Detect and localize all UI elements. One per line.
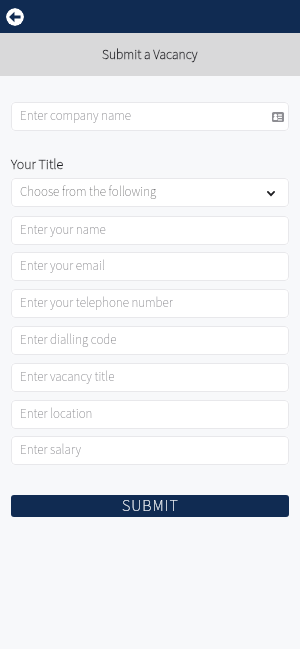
button[interactable]: Enter dialling code bbox=[11, 326, 289, 355]
button[interactable]: Enter salary bbox=[11, 436, 289, 465]
button[interactable]: Choose from the following bbox=[11, 178, 289, 207]
staticText: Choose from the following bbox=[20, 183, 267, 202]
button[interactable]: Back bbox=[6, 8, 24, 26]
button[interactable]: Enter vacancy title bbox=[11, 363, 289, 392]
staticText: Enter location bbox=[20, 405, 93, 424]
staticText: Submit a Vacancy bbox=[102, 45, 198, 64]
staticText: SUBMIT bbox=[122, 495, 179, 517]
staticText: Enter your email bbox=[20, 257, 105, 276]
button[interactable]: Enter location bbox=[11, 400, 289, 429]
button[interactable]: Enter your telephone number bbox=[11, 289, 289, 318]
staticText: Enter your name bbox=[20, 221, 106, 240]
staticText: Your Title bbox=[11, 155, 64, 175]
button[interactable]: Enter your email bbox=[11, 252, 289, 281]
button[interactable]: SUBMIT bbox=[11, 495, 289, 517]
button[interactable]: Enter company name bbox=[11, 102, 289, 131]
staticText: Enter your telephone number bbox=[20, 294, 173, 313]
staticText: Enter vacancy title bbox=[20, 368, 115, 387]
staticText: Enter company name bbox=[20, 107, 272, 126]
staticText: Enter dialling code bbox=[20, 331, 117, 350]
staticText: Enter salary bbox=[20, 441, 81, 460]
button[interactable]: Enter your name bbox=[11, 216, 289, 245]
